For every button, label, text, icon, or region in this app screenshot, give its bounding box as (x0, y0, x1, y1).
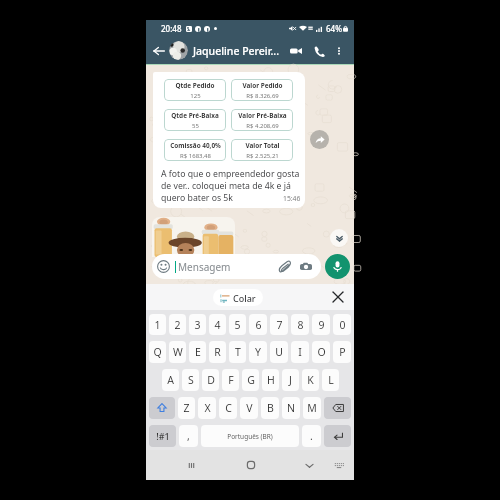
button[interactable]: F (222, 369, 239, 391)
button[interactable]: 0 (333, 314, 351, 335)
button[interactable]: Profile photo (169, 41, 188, 60)
button[interactable]: Português (BR) (201, 425, 299, 447)
button[interactable]: 4 (209, 314, 226, 335)
button[interactable]: M (303, 397, 321, 419)
button[interactable]: B (261, 397, 279, 419)
staticText: H (267, 373, 275, 387)
button[interactable]: More options (331, 43, 347, 59)
staticText: O (317, 345, 326, 359)
button[interactable]: N (282, 397, 300, 419)
button[interactable]: J (282, 369, 299, 391)
staticText: Jaqueline Pereir... (193, 44, 287, 58)
staticText: J (289, 373, 292, 387)
staticText: Qtde Pré-Baixa (171, 111, 219, 120)
button[interactable]: X (198, 397, 216, 419)
button[interactable]: U (270, 341, 288, 363)
button[interactable]: L (322, 369, 339, 391)
button[interactable]: Forward (310, 130, 329, 149)
button[interactable]: Z (178, 397, 195, 419)
staticText: P (339, 345, 346, 359)
staticText: T (235, 345, 241, 359)
button[interactable]: Attach (277, 260, 291, 274)
button[interactable]: Q (149, 341, 166, 363)
button[interactable]: I (291, 341, 309, 363)
staticText: G (247, 373, 255, 387)
button[interactable]: 5 (229, 314, 246, 335)
button[interactable]: 6 (249, 314, 267, 335)
staticText: quero bater os 5k (161, 192, 233, 204)
button[interactable]: O (312, 341, 330, 363)
staticText: R$ 8.326,69 (246, 92, 279, 100)
button[interactable]: Shift (149, 397, 175, 419)
button[interactable]: Valor Pedido (231, 79, 293, 101)
staticText: Qtde Pedido (175, 81, 215, 90)
button[interactable]: W (169, 341, 186, 363)
button[interactable]: V (240, 397, 258, 419)
button[interactable]: Camera (299, 260, 313, 274)
button[interactable]: Voice call (310, 42, 328, 60)
staticText: 3 (194, 318, 201, 332)
staticText: R$ 4.208,69 (246, 122, 279, 130)
button[interactable]: Back (150, 42, 168, 60)
button[interactable]: S (182, 369, 199, 391)
button[interactable]: R (209, 341, 226, 363)
button[interactable]: 9 (312, 314, 330, 335)
staticText: M (307, 401, 317, 415)
staticText: B (267, 401, 274, 415)
button[interactable]: Valor Total (231, 139, 293, 161)
button[interactable]: K (302, 369, 319, 391)
staticText: L (328, 373, 334, 387)
button[interactable]: D (202, 369, 219, 391)
staticText: 7 (276, 318, 283, 332)
staticText: 64% (326, 23, 342, 34)
button[interactable]: Qtde Pedido (164, 79, 226, 101)
button[interactable]: T (229, 341, 246, 363)
staticText: R$ 2.525,21 (246, 152, 279, 160)
button[interactable]: Comissão 40,0% (164, 139, 226, 161)
button[interactable]: Backspace (324, 397, 351, 419)
button[interactable]: Mensagem (152, 254, 321, 279)
button[interactable]: Recents (161, 450, 221, 480)
staticText: !#1 (156, 430, 170, 442)
staticText: E (195, 345, 201, 359)
button[interactable]: Keyboard layout (332, 458, 346, 472)
button[interactable]: Y (249, 341, 267, 363)
staticText: 5 (234, 318, 241, 332)
button[interactable]: H (262, 369, 279, 391)
button[interactable]: G (242, 369, 259, 391)
button[interactable]: Enter (324, 425, 351, 447)
button[interactable]: 2 (169, 314, 186, 335)
button[interactable]: Close suggestion (330, 289, 346, 305)
button[interactable]: 8 (291, 314, 309, 335)
button[interactable]: P (333, 341, 351, 363)
staticText: 6 (255, 318, 262, 332)
staticText: C (225, 401, 232, 415)
button[interactable]: Voice message (325, 254, 350, 279)
staticText: . (310, 429, 313, 443)
button[interactable]: Valor Pré-Baixa (231, 109, 293, 131)
button[interactable]: C (219, 397, 237, 419)
staticText: 0 (339, 318, 346, 332)
staticText: K (307, 373, 314, 387)
button[interactable]: E (189, 341, 206, 363)
button[interactable]: Scroll to bottom (330, 229, 348, 247)
staticText: 4 (214, 318, 221, 332)
staticText: A foto que o empreendedor gosta (161, 168, 300, 180)
staticText: R (214, 345, 221, 359)
button[interactable]: Colar (213, 289, 263, 306)
button[interactable]: Home (221, 450, 280, 480)
button[interactable]: Hide keyboard (280, 450, 339, 480)
button[interactable]: Video call (287, 42, 305, 60)
button[interactable]: . (302, 425, 321, 447)
staticText: 1 (154, 318, 161, 332)
button[interactable]: !#1 (149, 425, 176, 447)
button[interactable]: A (162, 369, 179, 391)
button[interactable]: 3 (189, 314, 206, 335)
button[interactable]: Qtde Pré-Baixa (164, 109, 226, 131)
button[interactable]: 1 (149, 314, 166, 335)
button[interactable]: , (179, 425, 198, 447)
staticText: Z (183, 401, 190, 415)
staticText: Valor Pedido (242, 81, 283, 90)
staticText: Valor Pré-Baixa (238, 111, 287, 120)
button[interactable]: 7 (270, 314, 288, 335)
